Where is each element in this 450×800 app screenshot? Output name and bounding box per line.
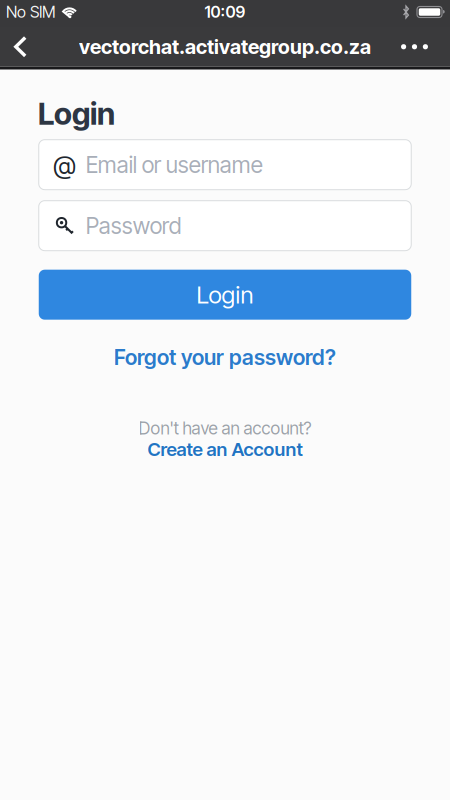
button[interactable]: [0, 36, 27, 58]
staticText: Don't have an account?: [138, 418, 311, 438]
staticText: Forgot your password?: [114, 345, 336, 370]
button[interactable]: Create an Account: [147, 438, 302, 460]
staticText: No SIM: [6, 3, 56, 21]
button[interactable]: Forgot your password?: [114, 345, 336, 370]
staticText: vectorchat.activategroup.co.za: [79, 35, 371, 59]
staticText: Login: [38, 95, 115, 132]
staticText: Email or username: [86, 151, 263, 178]
staticText: 10:09: [204, 3, 245, 21]
button[interactable]: Password: [39, 201, 411, 251]
staticText: Login: [196, 280, 253, 309]
button[interactable]: Login: [39, 270, 411, 320]
staticText: Password: [86, 212, 182, 239]
staticText: Create an Account: [147, 438, 302, 460]
button[interactable]: [401, 44, 450, 49]
button[interactable]: @: [39, 140, 411, 190]
staticText: @: [53, 150, 76, 180]
